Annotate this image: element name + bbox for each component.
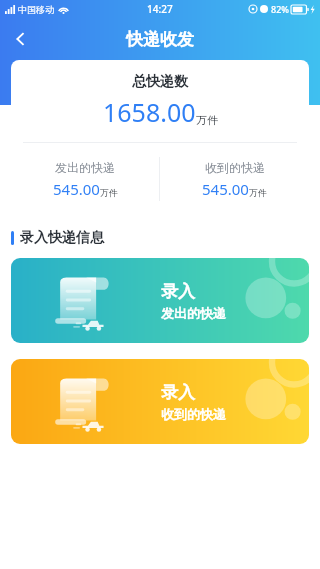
staticText: 545.00	[53, 179, 100, 199]
staticText: 万件	[100, 187, 118, 198]
staticText: 发出的快递	[55, 160, 115, 175]
staticText: 收到的快递	[161, 406, 226, 422]
staticText: 录入	[161, 382, 195, 403]
staticText: 中国移动	[18, 4, 54, 15]
button[interactable]: Back	[0, 18, 42, 60]
staticText: 快递收发	[126, 29, 194, 50]
button[interactable]: 收到的快递	[160, 160, 309, 199]
button[interactable]: 录入	[11, 258, 309, 343]
staticText: 收到的快递	[205, 160, 265, 175]
staticText: 545.00	[202, 179, 249, 199]
staticText: 录入	[161, 281, 195, 302]
staticText: 发出的快递	[161, 305, 226, 321]
button[interactable]: 录入	[11, 359, 309, 444]
button[interactable]: 发出的快递	[11, 160, 159, 199]
staticText: 录入快递信息	[20, 229, 104, 247]
staticText: 14:27	[147, 2, 173, 16]
staticText: 总快递数	[11, 73, 309, 91]
staticText: 万件	[196, 113, 218, 127]
staticText: 82%	[271, 3, 289, 15]
staticText: 万件	[249, 187, 267, 198]
staticText: 1658.00	[103, 95, 196, 129]
